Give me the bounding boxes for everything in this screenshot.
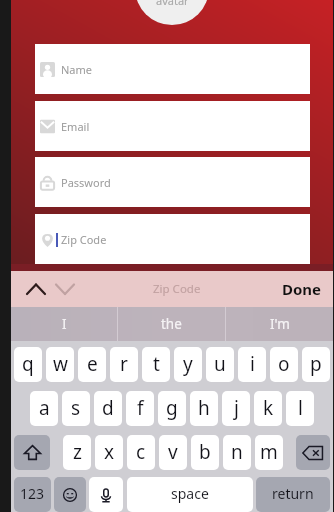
staticText: return — [272, 484, 314, 503]
button[interactable]: Password — [35, 157, 310, 207]
button[interactable]: Zip Code — [35, 214, 310, 264]
button[interactable]: w — [46, 347, 74, 382]
button[interactable]: a — [30, 391, 58, 426]
button[interactable]: d — [94, 391, 122, 426]
staticText: p — [310, 351, 322, 377]
button[interactable]: 123 — [14, 477, 51, 512]
button[interactable]: m — [255, 435, 283, 470]
staticText: Done — [282, 279, 322, 299]
button[interactable]: x — [95, 435, 123, 470]
button[interactable]: k — [254, 391, 282, 426]
button[interactable]: Backspace — [296, 435, 330, 470]
staticText: a — [39, 395, 50, 421]
button[interactable]: space — [127, 477, 253, 512]
button[interactable]: v — [159, 435, 187, 470]
staticText: k — [263, 395, 274, 421]
staticText: n — [231, 439, 243, 465]
staticText: e — [87, 351, 98, 377]
button[interactable]: b — [191, 435, 219, 470]
staticText: I'm — [270, 315, 290, 333]
staticText: I — [62, 315, 67, 333]
button[interactable]: the — [118, 307, 225, 341]
button[interactable]: Shift — [14, 435, 50, 470]
button[interactable]: u — [206, 347, 234, 382]
staticText: the — [161, 315, 182, 333]
staticText: space — [171, 484, 209, 503]
staticText: u — [214, 351, 226, 377]
staticText: z — [73, 439, 82, 465]
staticText: Password — [61, 175, 111, 190]
staticText: i — [250, 351, 255, 377]
button[interactable]: l — [286, 391, 314, 426]
button[interactable]: Voice input — [89, 477, 123, 512]
button[interactable]: o — [270, 347, 298, 382]
staticText: b — [199, 439, 211, 465]
button[interactable]: r — [110, 347, 138, 382]
staticText: j — [234, 395, 239, 421]
staticText: Email — [61, 119, 90, 134]
button[interactable]: i — [238, 347, 266, 382]
button[interactable]: I'm — [226, 307, 333, 341]
button[interactable]: avatar — [135, 0, 209, 25]
staticText: h — [198, 395, 210, 421]
button[interactable]: s — [62, 391, 90, 426]
button[interactable]: return — [256, 477, 330, 512]
button[interactable]: e — [78, 347, 106, 382]
staticText: r — [120, 351, 128, 377]
button[interactable]: z — [63, 435, 91, 470]
staticText: w — [53, 351, 68, 377]
button[interactable]: Emoji — [54, 477, 86, 512]
staticText: t — [153, 351, 160, 377]
staticText: d — [102, 395, 114, 421]
staticText: f — [137, 395, 144, 421]
staticText: g — [166, 395, 178, 421]
button[interactable]: h — [190, 391, 218, 426]
staticText: q — [22, 351, 34, 377]
staticText: x — [104, 439, 115, 465]
staticText: m — [260, 439, 278, 465]
button[interactable]: Email — [35, 101, 310, 151]
button[interactable]: q — [14, 347, 42, 382]
staticText: Name — [61, 62, 93, 77]
button[interactable]: n — [223, 435, 251, 470]
button[interactable]: Next field — [52, 276, 78, 302]
staticText: c — [136, 439, 146, 465]
button[interactable]: p — [302, 347, 330, 382]
staticText: y — [183, 351, 193, 377]
staticText: Zip Code — [61, 232, 107, 247]
staticText: l — [298, 395, 303, 421]
staticText: avatar — [156, 0, 189, 8]
button[interactable]: Done — [276, 275, 328, 303]
button[interactable]: g — [158, 391, 186, 426]
button[interactable]: Name — [35, 44, 310, 94]
button[interactable]: c — [127, 435, 155, 470]
staticText: o — [278, 351, 290, 377]
button[interactable]: I — [11, 307, 117, 341]
staticText: s — [71, 395, 81, 421]
button[interactable]: j — [222, 391, 250, 426]
staticText: Zip Code — [153, 281, 201, 297]
button[interactable]: f — [126, 391, 154, 426]
button[interactable]: y — [174, 347, 202, 382]
button[interactable]: Previous field — [23, 276, 49, 302]
button[interactable]: t — [142, 347, 170, 382]
staticText: v — [168, 439, 178, 465]
staticText: 123 — [20, 484, 45, 503]
